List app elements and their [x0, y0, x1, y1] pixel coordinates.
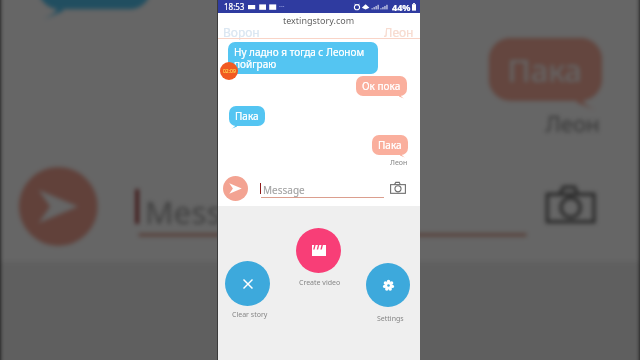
- staticText: Леон: [390, 158, 408, 168]
- button[interactable]: [366, 263, 410, 307]
- staticText: Пака: [235, 109, 259, 123]
- staticText: Clear story: [232, 310, 268, 320]
- button[interactable]: Send: [19, 167, 98, 246]
- button[interactable]: Send: [223, 176, 248, 201]
- staticText: 02:09: [223, 68, 236, 75]
- staticText: Леон: [545, 110, 602, 142]
- staticText: Settings: [377, 314, 404, 324]
- staticText: 44%: [392, 1, 411, 13]
- staticText: Ок пока: [362, 79, 401, 93]
- button[interactable]: Camera: [542, 177, 599, 233]
- staticText: ···: [279, 2, 285, 12]
- staticText: Message: [263, 183, 305, 197]
- staticText: textingstory.com: [217, 14, 420, 26]
- button[interactable]: [296, 228, 341, 273]
- staticText: Пака: [378, 138, 402, 152]
- staticText: Пака: [508, 47, 583, 91]
- button[interactable]: Camera: [389, 179, 407, 197]
- button[interactable]: [225, 261, 270, 306]
- staticText: Message: [145, 189, 277, 233]
- staticText: Ворон: [223, 24, 260, 40]
- staticText: Create video: [299, 278, 341, 288]
- staticText: Леон: [384, 24, 414, 40]
- staticText: 18:53: [224, 1, 245, 12]
- staticText: Ну ладно я тогда с Леоном пойграю: [234, 45, 372, 71]
